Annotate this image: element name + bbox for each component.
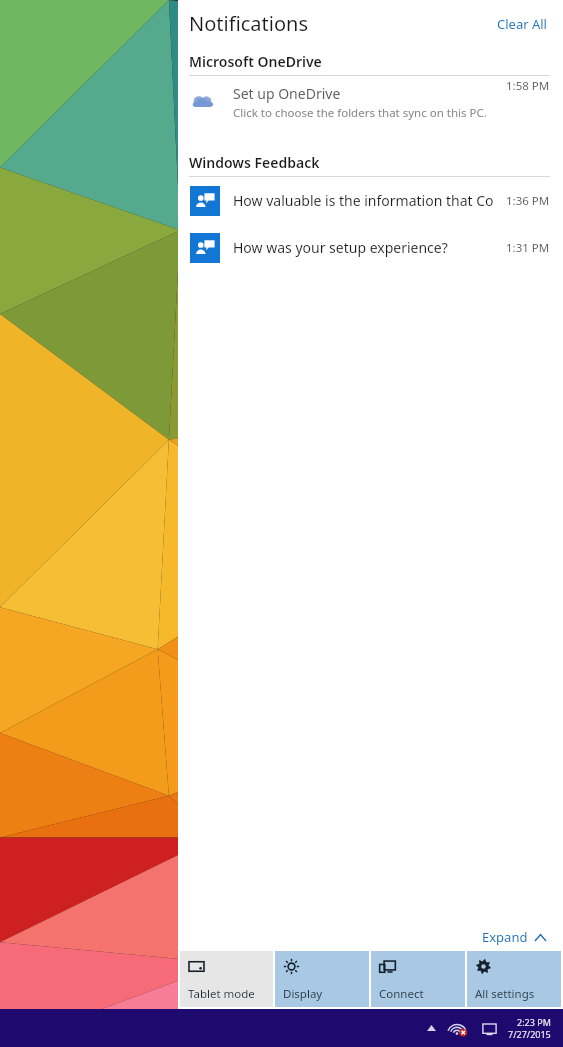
staticText: Tablet mode	[188, 986, 255, 1002]
button[interactable]: Tablet mode	[180, 951, 273, 1007]
staticText: Notifications	[189, 10, 308, 37]
staticText: Click to choose the folders that sync on…	[233, 105, 487, 121]
button[interactable]: Expand	[479, 925, 549, 949]
button[interactable]: Network	[444, 1013, 474, 1043]
staticText: All settings	[475, 986, 535, 1002]
staticText: Microsoft OneDrive	[189, 52, 322, 71]
other: Windows Feedback	[190, 233, 220, 263]
staticText: 1:58 PM	[506, 78, 550, 94]
button[interactable]: Windows Feedback	[178, 177, 563, 224]
button[interactable]: OneDrive	[178, 76, 563, 128]
button[interactable]: Display brightness	[275, 951, 369, 1007]
staticText: Connect	[379, 986, 424, 1002]
staticText: Display	[283, 986, 323, 1002]
button[interactable]: Windows Feedback	[178, 224, 563, 271]
staticText: Set up OneDrive	[233, 84, 341, 103]
other: Windows Feedback	[190, 186, 220, 216]
staticText: 1:31 PM	[506, 240, 550, 256]
other: Display brightness	[283, 958, 300, 975]
button[interactable]: All settings	[467, 951, 561, 1007]
staticText: How valuable is the information that Co	[233, 191, 494, 210]
button[interactable]: Show hidden icons	[418, 1015, 444, 1041]
staticText: How was your setup experience?	[233, 238, 448, 257]
button[interactable]: 2:23 PM	[504, 1016, 555, 1040]
staticText: 2:23 PM	[517, 1016, 551, 1028]
staticText: Clear All	[497, 15, 547, 33]
staticText: Expand	[482, 928, 528, 946]
button[interactable]: Connect	[371, 951, 465, 1007]
other: Connect	[379, 958, 396, 975]
button[interactable]: Clear All	[495, 11, 549, 37]
staticText: Windows Feedback	[189, 153, 320, 172]
staticText: 7/27/2015	[508, 1028, 551, 1040]
button[interactable]: Action Center	[474, 1013, 504, 1043]
other: All settings	[475, 958, 492, 975]
other: Tablet mode	[188, 958, 205, 975]
staticText: 1:36 PM	[506, 193, 550, 209]
other: OneDrive	[191, 88, 219, 116]
